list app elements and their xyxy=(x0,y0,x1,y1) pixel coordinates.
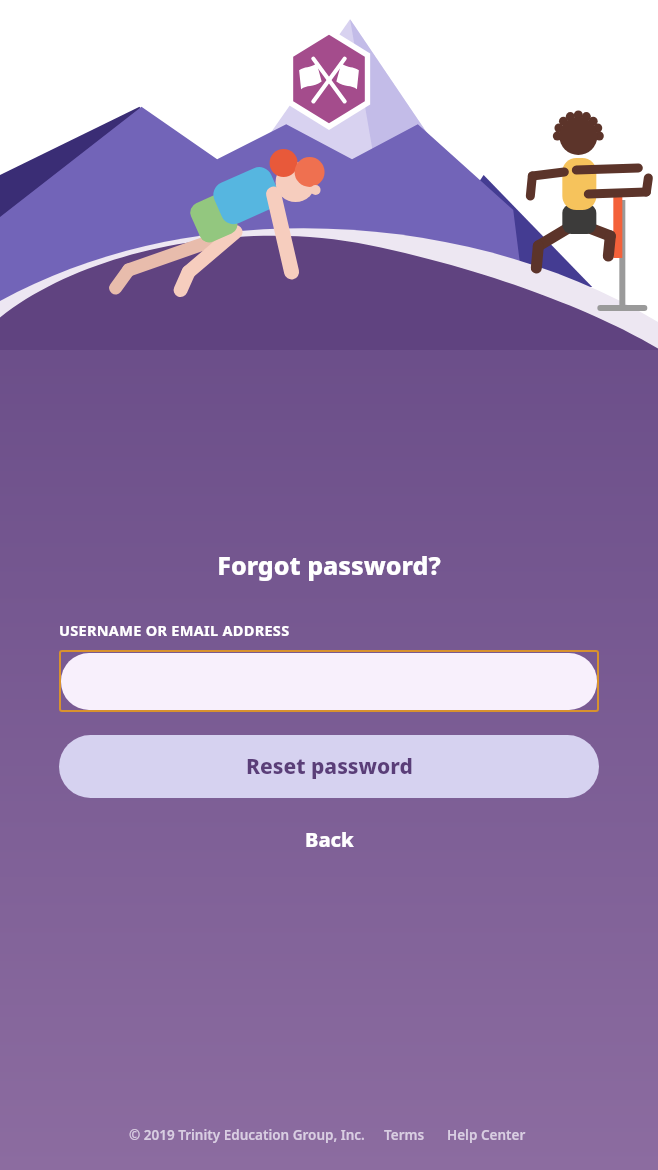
button[interactable]: Terms xyxy=(381,1124,428,1146)
staticText: © 2019 Trinity Education Group, Inc. xyxy=(129,1126,365,1144)
staticText: Back xyxy=(305,826,354,853)
button[interactable] xyxy=(59,650,599,712)
other: Trinity logo xyxy=(280,28,378,130)
staticText: Reset password xyxy=(246,752,413,781)
staticText: Forgot password? xyxy=(59,548,599,582)
button[interactable]: Reset password xyxy=(59,735,599,798)
button[interactable]: Back xyxy=(291,820,368,859)
button[interactable]: Help Center xyxy=(444,1124,529,1146)
staticText: Help Center xyxy=(447,1126,526,1144)
staticText: Terms xyxy=(384,1126,425,1144)
staticText: USERNAME OR EMAIL ADDRESS xyxy=(59,620,290,640)
